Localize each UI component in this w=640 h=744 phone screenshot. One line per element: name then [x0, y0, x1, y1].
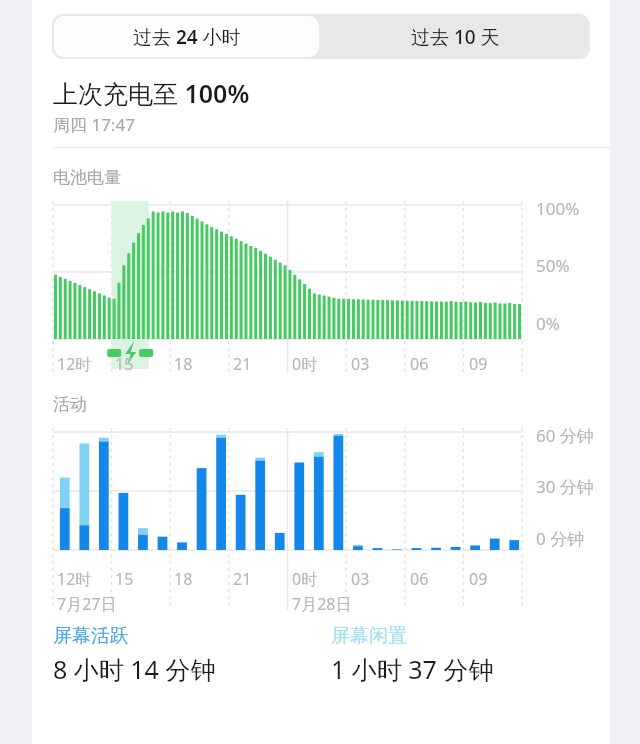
staticText: 50%: [536, 254, 570, 277]
staticText: 06: [410, 568, 429, 590]
staticText: 15: [115, 568, 134, 590]
staticText: 7月27日: [57, 593, 117, 615]
staticText: 0时: [292, 568, 318, 590]
staticText: 18: [174, 568, 193, 590]
staticText: 09: [469, 353, 488, 375]
staticText: 0%: [536, 312, 560, 335]
staticText: 8 小时 14 分钟: [53, 652, 216, 686]
button[interactable]: 过去 10 天: [321, 14, 590, 59]
staticText: 09: [469, 568, 488, 590]
staticText: 03: [351, 568, 370, 590]
staticText: 21: [233, 568, 252, 590]
staticText: 过去 24 小时: [133, 24, 241, 50]
staticText: 上次充电至 100%: [53, 76, 250, 110]
button[interactable]: 过去 24 小时: [54, 16, 319, 57]
staticText: 屏幕闲置: [331, 624, 407, 648]
staticText: 12时: [57, 353, 92, 375]
staticText: 21: [233, 353, 252, 375]
staticText: 30 分钟: [536, 475, 594, 498]
staticText: 过去 10 天: [411, 24, 500, 50]
staticText: 12时: [57, 568, 92, 590]
staticText: 06: [410, 353, 429, 375]
staticText: 活动: [53, 394, 87, 415]
staticText: 03: [351, 353, 370, 375]
staticText: 屏幕活跃: [53, 624, 129, 648]
staticText: 60 分钟: [536, 424, 594, 447]
staticText: 周四 17:47: [53, 113, 135, 136]
staticText: 18: [174, 353, 193, 375]
staticText: 0时: [292, 353, 318, 375]
staticText: 100%: [536, 197, 580, 220]
staticText: 1 小时 37 分钟: [331, 652, 494, 686]
staticText: 15: [115, 353, 134, 375]
staticText: 7月28日: [292, 593, 352, 615]
staticText: 电池电量: [53, 167, 121, 188]
staticText: 0 分钟: [536, 527, 585, 550]
